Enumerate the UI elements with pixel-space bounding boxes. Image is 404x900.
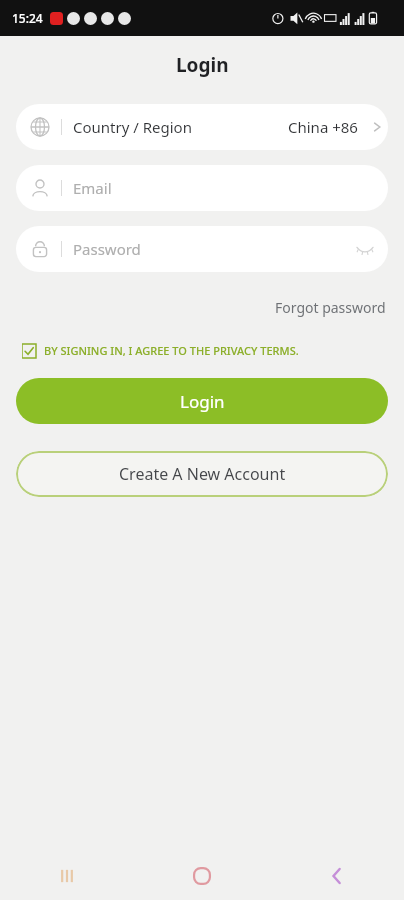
- staticText: China +86: [288, 117, 358, 137]
- button[interactable]: Email: [16, 165, 388, 211]
- button[interactable]: Home: [134, 852, 269, 900]
- staticText: Login: [176, 52, 229, 78]
- button[interactable]: Country / Region: [16, 104, 388, 150]
- staticText: Country / Region: [73, 117, 192, 137]
- staticText: Password: [73, 239, 141, 259]
- staticText: Forgot password: [275, 298, 386, 317]
- staticText: Login: [180, 390, 225, 413]
- button[interactable]: Password: [16, 226, 388, 272]
- button[interactable]: Show password: [348, 232, 382, 266]
- button[interactable]: Back: [269, 852, 404, 900]
- button[interactable]: Login: [16, 378, 388, 424]
- button[interactable]: Recent apps: [0, 852, 134, 900]
- staticText: Create A New Account: [119, 463, 286, 485]
- button[interactable]: Create A New Account: [16, 451, 388, 497]
- staticText: Email: [73, 178, 112, 198]
- button[interactable]: BY SIGNING IN, I AGREE TO THE PRIVACY TE…: [22, 339, 299, 362]
- button[interactable]: Forgot password: [257, 292, 404, 323]
- staticText: 15:24: [12, 10, 43, 26]
- staticText: BY SIGNING IN, I AGREE TO THE PRIVACY TE…: [44, 343, 299, 358]
